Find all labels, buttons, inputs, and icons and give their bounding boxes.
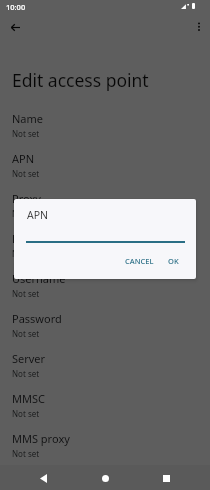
staticText: MMSC	[12, 391, 45, 406]
staticText: CANCEL	[125, 256, 154, 266]
staticText: Port	[12, 231, 34, 246]
staticText: Not set	[12, 448, 40, 459]
button[interactable]: OK	[157, 252, 196, 270]
staticText: Not set	[12, 248, 40, 259]
staticText: Edit access point	[12, 68, 149, 92]
button[interactable]: Back	[32, 467, 54, 489]
staticText: Not set	[12, 208, 40, 219]
button[interactable]: Server	[0, 346, 210, 386]
staticText: Not set	[12, 128, 40, 139]
staticText: Not set	[12, 168, 40, 179]
staticText: Server	[12, 351, 46, 366]
button[interactable]: Password	[0, 306, 210, 346]
button[interactable]: Proxy	[0, 186, 210, 226]
staticText: Password	[12, 311, 62, 326]
button[interactable]: Recents	[155, 467, 177, 489]
staticText: MMS proxy	[12, 431, 70, 446]
staticText: Not set	[12, 368, 40, 379]
button[interactable]: APN	[0, 146, 210, 186]
staticText: APN	[12, 151, 35, 166]
staticText: 10:00	[6, 2, 26, 12]
button[interactable]: Home	[94, 467, 116, 489]
button[interactable]: Name	[0, 106, 210, 146]
staticText: Proxy	[12, 191, 41, 206]
staticText: Not set	[12, 408, 40, 419]
button[interactable]: Navigate up	[3, 15, 27, 39]
staticText: OK	[168, 256, 179, 266]
button[interactable]: Port	[0, 226, 210, 266]
button[interactable]: MMSC	[0, 386, 210, 426]
button[interactable]: MMS proxy	[0, 426, 210, 466]
staticText: APN	[27, 208, 49, 222]
button[interactable]: More options	[187, 16, 210, 39]
button[interactable]: CANCEL	[118, 252, 157, 270]
staticText: Name	[12, 111, 44, 126]
staticText: Not set	[12, 288, 40, 299]
staticText: Username	[12, 271, 66, 286]
staticText: Not set	[12, 328, 40, 339]
button[interactable]: Username	[0, 266, 210, 306]
